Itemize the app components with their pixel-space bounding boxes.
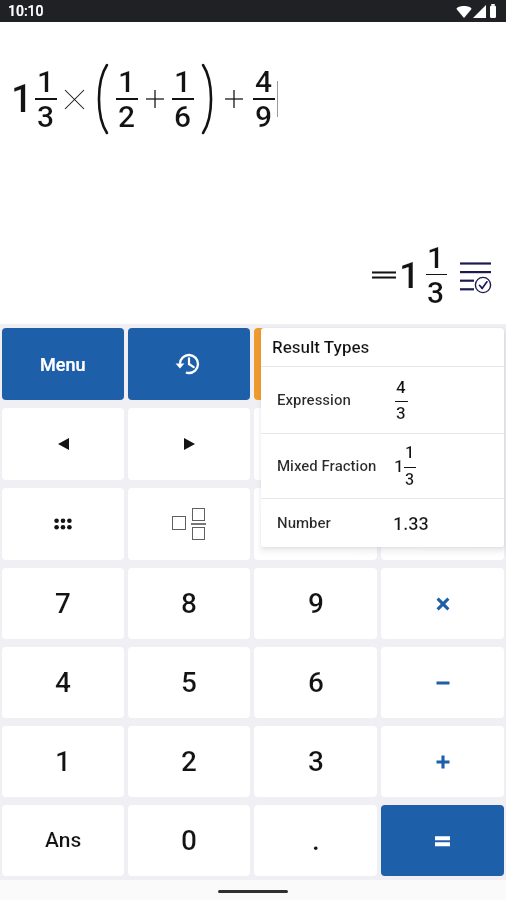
staticText: 4 <box>55 666 71 699</box>
staticText: 1 <box>55 745 71 778</box>
staticText: 3 <box>308 745 324 778</box>
staticText: 1 <box>405 443 415 462</box>
button[interactable]: Multiply <box>381 568 504 639</box>
staticText: 9 <box>255 99 273 134</box>
button[interactable]: 2 <box>128 726 250 797</box>
button[interactable]: More keys <box>2 488 124 560</box>
button[interactable] <box>381 328 504 400</box>
button[interactable]: Add <box>381 726 504 797</box>
staticText: 3 <box>427 275 445 310</box>
staticText: 7 <box>55 587 71 620</box>
staticText: 1.33 <box>393 513 429 534</box>
staticText: 4 <box>396 377 406 397</box>
staticText: 2 <box>118 99 136 134</box>
staticText: 4 <box>255 64 273 99</box>
button[interactable]: 6 <box>254 647 377 718</box>
button[interactable] <box>254 488 377 560</box>
button[interactable]: Equals <box>381 805 504 876</box>
other: Equals <box>435 835 450 847</box>
staticText: 0 <box>181 824 197 857</box>
other: Add <box>433 752 453 772</box>
staticText: . <box>312 824 320 857</box>
staticText: 1 <box>399 254 421 297</box>
other: Subtract <box>433 673 453 693</box>
button[interactable]: Expression <box>261 367 504 433</box>
staticText: 3 <box>405 470 415 489</box>
button[interactable]: Number <box>261 499 504 547</box>
staticText: Menu <box>40 354 86 375</box>
button[interactable]: 0 <box>128 805 250 876</box>
button[interactable] <box>254 328 377 400</box>
button[interactable]: Result types <box>460 259 491 291</box>
button[interactable]: Ans <box>2 805 124 876</box>
staticText: 5 <box>181 666 197 699</box>
staticText: Number <box>277 514 331 532</box>
button[interactable]: Move left <box>2 408 124 480</box>
button[interactable]: Mixed fraction <box>128 488 250 560</box>
other: Multiply <box>433 594 453 614</box>
staticText: 6 <box>308 666 324 699</box>
staticText: Mixed Fraction <box>277 457 377 475</box>
button[interactable]: History <box>128 328 250 400</box>
button[interactable]: 8 <box>128 568 250 639</box>
staticText: 3 <box>37 99 55 134</box>
other: Move left <box>58 438 69 450</box>
staticText: 1 <box>11 77 33 122</box>
staticText: 1 <box>174 64 192 99</box>
other: History <box>178 353 200 375</box>
other: More keys <box>54 518 72 530</box>
staticText: 1 <box>427 240 445 275</box>
button[interactable]: Mixed Fraction <box>261 434 504 498</box>
other: Move right <box>184 438 195 450</box>
staticText: 1 <box>118 64 136 99</box>
staticText: 3 <box>396 403 406 423</box>
staticText: 6 <box>174 99 192 134</box>
staticText: 8 <box>181 587 197 620</box>
button[interactable] <box>381 488 504 560</box>
staticText: Expression <box>277 391 351 409</box>
staticText: Ans <box>45 828 82 853</box>
button[interactable]: 3 <box>254 726 377 797</box>
button[interactable]: Menu <box>2 328 124 400</box>
button[interactable] <box>254 408 377 480</box>
button[interactable] <box>381 408 504 480</box>
button[interactable]: 5 <box>128 647 250 718</box>
button[interactable]: 1 <box>2 726 124 797</box>
staticText: 10:10 <box>8 3 44 19</box>
button[interactable]: 4 <box>2 647 124 718</box>
button[interactable]: 7 <box>2 568 124 639</box>
staticText: 1 <box>37 64 55 99</box>
staticText: 9 <box>308 587 324 620</box>
button[interactable]: . <box>254 805 377 876</box>
button[interactable]: Subtract <box>381 647 504 718</box>
other: Mixed fraction <box>172 508 206 540</box>
staticText: Result Types <box>272 337 370 357</box>
staticText: 2 <box>181 745 197 778</box>
button[interactable]: Move right <box>128 408 250 480</box>
button[interactable]: 9 <box>254 568 377 639</box>
staticText: 1 <box>394 456 404 476</box>
